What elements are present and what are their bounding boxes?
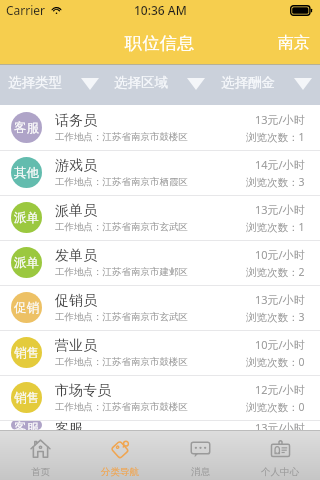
staticText: 话务员	[55, 112, 97, 130]
staticText: 消息	[191, 466, 210, 478]
staticText: 工作地点：江苏省南京市鼓楼区	[55, 356, 188, 368]
staticText: 促销	[14, 300, 39, 316]
staticText: 选择区域	[114, 74, 168, 91]
button[interactable]: 销售	[0, 330, 320, 375]
staticText: 选择酬金	[221, 74, 275, 91]
staticText: 10:36 AM	[134, 2, 187, 18]
staticText: 个人中心	[261, 466, 299, 478]
staticText: 工作地点：江苏省南京市鼓楼区	[55, 131, 188, 143]
staticText: 游戏员	[55, 157, 97, 175]
staticText: 工作地点：江苏省南京市玄武区	[55, 221, 188, 233]
staticText: 南京	[278, 33, 310, 53]
button[interactable]: 派单	[0, 240, 320, 285]
staticText: 职位信息	[125, 33, 195, 54]
button[interactable]: 南京	[264, 24, 320, 60]
staticText: 分类导航	[101, 466, 139, 478]
staticText: 工作地点：江苏省南京市栖霞区	[55, 176, 188, 188]
staticText: 13元/小时	[255, 420, 305, 430]
button[interactable]: 客服	[0, 105, 320, 150]
staticText: 派单员	[55, 202, 97, 220]
staticText: 工作地点：江苏省南京市鼓楼区	[55, 401, 188, 413]
staticText: 派单	[14, 210, 39, 226]
staticText: 工作地点：江苏省南京市建邺区	[55, 266, 188, 278]
staticText: 浏览次数：3	[246, 175, 305, 189]
staticText: 首页	[31, 466, 50, 478]
button[interactable]: Messages	[160, 431, 240, 480]
staticText: 工作地点：江苏省南京市玄武区	[55, 311, 188, 323]
staticText: 13元/小时	[255, 202, 305, 217]
button[interactable]: Category navigation	[80, 431, 160, 480]
staticText: 客服	[14, 420, 39, 430]
staticText: 浏览次数：1	[246, 130, 305, 144]
staticText: 促销员	[55, 292, 97, 310]
staticText: 12元/小时	[255, 382, 305, 397]
staticText: 营业员	[55, 337, 97, 355]
staticText: 10元/小时	[255, 337, 305, 352]
staticText: 销售	[14, 390, 39, 406]
staticText: 浏览次数：3	[246, 310, 305, 324]
staticText: 其他	[14, 165, 39, 181]
button[interactable]: 选择类型	[0, 65, 106, 105]
button[interactable]: 派单	[0, 195, 320, 240]
staticText: Carrier	[6, 2, 46, 18]
staticText: 市场专员	[55, 382, 111, 400]
button[interactable]: 选择酬金	[213, 65, 320, 105]
staticText: 选择类型	[8, 74, 62, 91]
staticText: 浏览次数：1	[246, 220, 305, 234]
button[interactable]: 其他	[0, 150, 320, 195]
staticText: 13元/小时	[255, 292, 305, 307]
staticText: 浏览次数：0	[246, 400, 305, 414]
staticText: 发单员	[55, 247, 97, 265]
staticText: 10元/小时	[255, 247, 305, 262]
button[interactable]: 选择区域	[106, 65, 213, 105]
button[interactable]: 促销	[0, 285, 320, 330]
staticText: 派单	[14, 255, 39, 271]
staticText: 客服	[14, 120, 39, 136]
button[interactable]: Profile	[240, 431, 320, 480]
staticText: 浏览次数：0	[246, 355, 305, 369]
staticText: 浏览次数：2	[246, 265, 305, 279]
staticText: 14元/小时	[255, 157, 305, 172]
staticText: 销售	[14, 345, 39, 361]
button[interactable]: 销售	[0, 375, 320, 420]
staticText: 客服	[55, 420, 83, 430]
staticText: 13元/小时	[255, 112, 305, 127]
button[interactable]: 客服	[0, 420, 320, 430]
button[interactable]: Home	[0, 431, 80, 480]
